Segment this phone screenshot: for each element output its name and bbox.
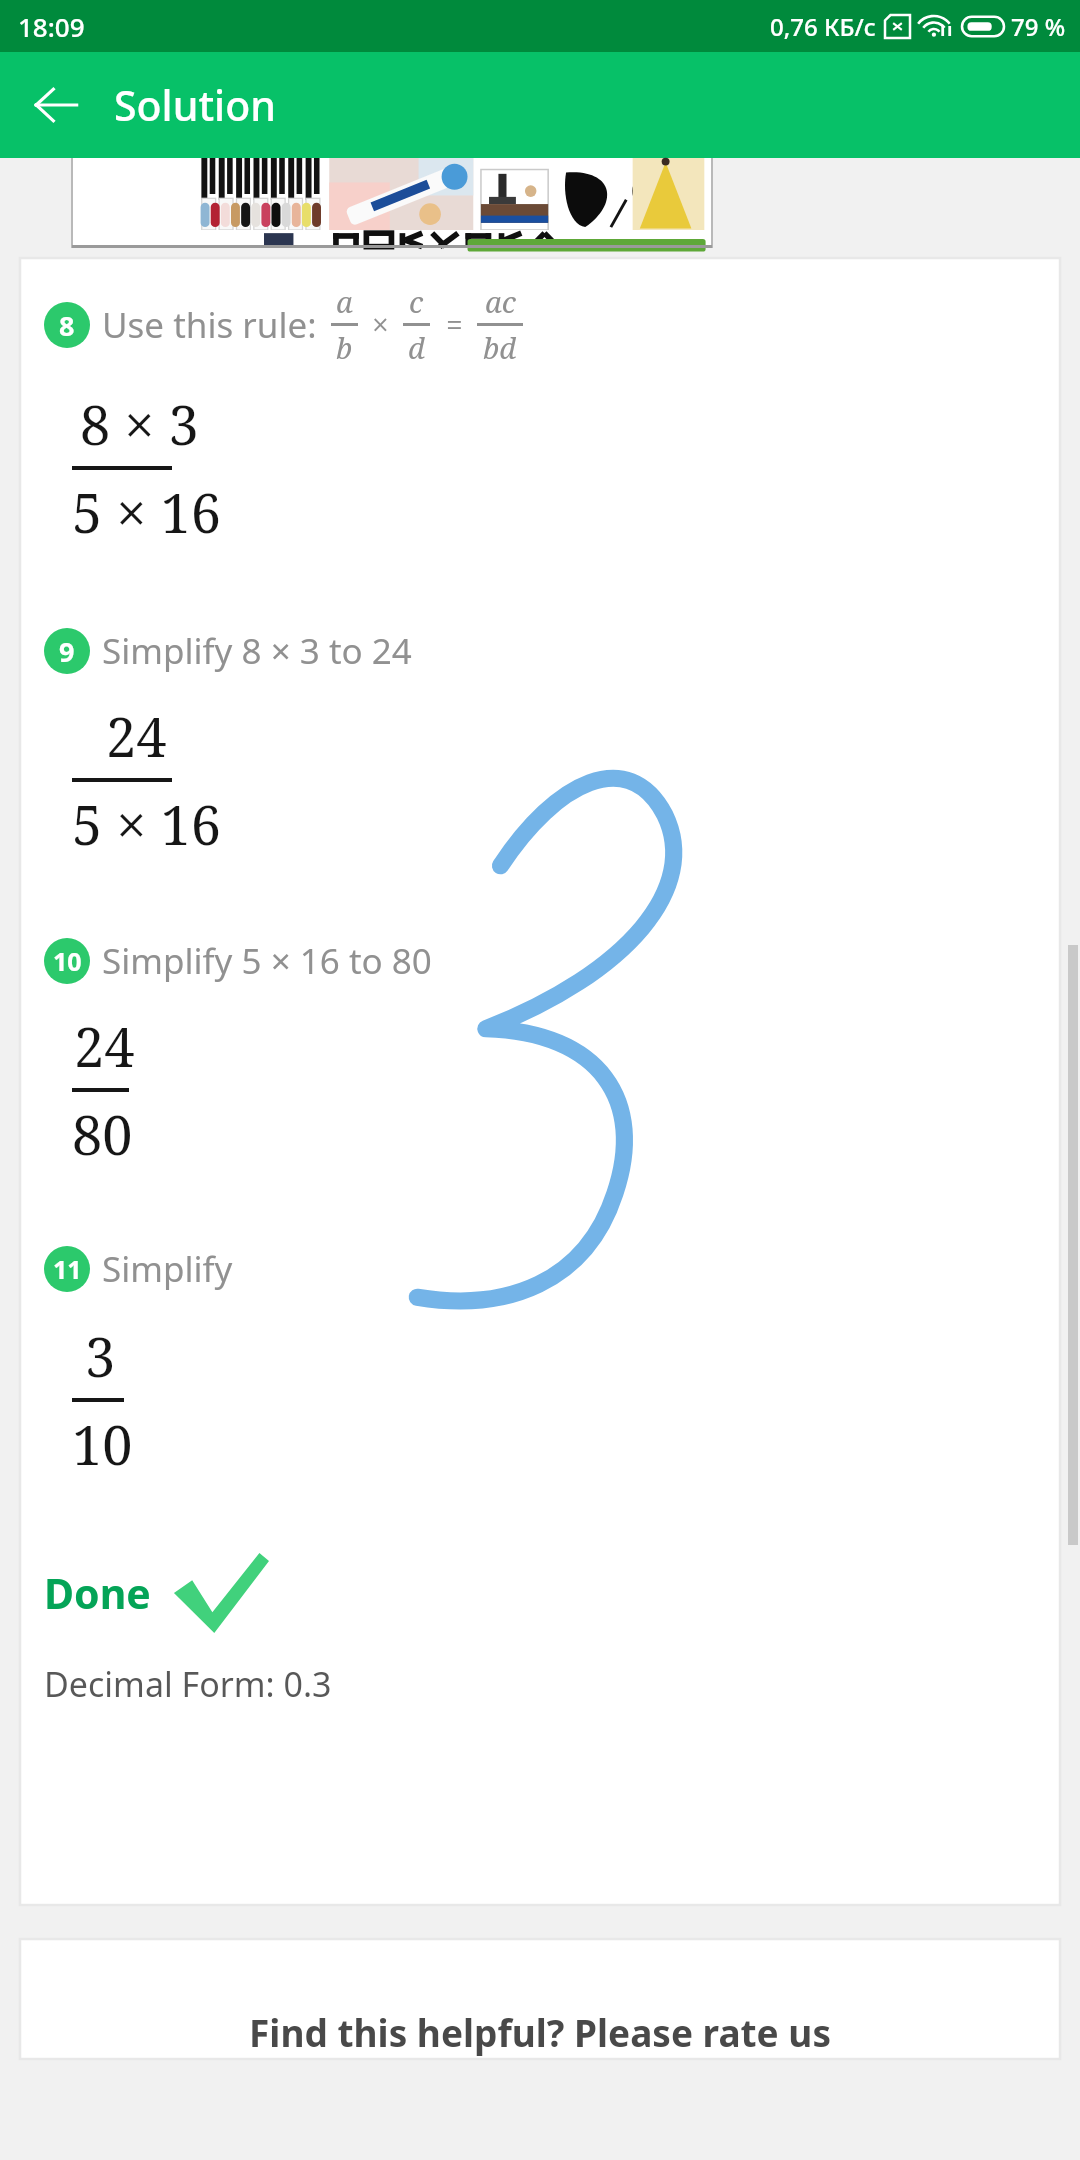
staticText: Use this rule:	[102, 301, 317, 349]
staticText: Find this helpful? Please rate us	[20, 2007, 1060, 2057]
staticText: 18:09	[18, 9, 85, 44]
staticText: Simplify 8 × 3 to 24	[102, 627, 412, 675]
staticText: Decimal Form: 0.3	[44, 1661, 332, 1707]
staticText: c	[409, 282, 424, 321]
staticText: ac	[485, 282, 516, 321]
button[interactable]: 9	[44, 627, 1060, 675]
staticText: 8 × 3	[80, 387, 199, 461]
staticText: 11	[53, 1252, 82, 1286]
staticText: ×	[372, 304, 389, 345]
staticText: Solution	[114, 77, 276, 133]
staticText: bd	[483, 328, 517, 367]
staticText: 79 %	[1011, 10, 1066, 43]
staticText: 5 × 16	[72, 787, 221, 861]
button[interactable]: Advertisement	[72, 158, 712, 248]
staticText: a	[336, 282, 353, 321]
staticText: 3	[85, 1319, 116, 1393]
staticText: =	[446, 304, 463, 345]
staticText: Simplify 5 × 16 to 80	[102, 937, 432, 985]
button[interactable]: 10	[44, 937, 1060, 985]
staticText: Simplify	[102, 1245, 233, 1293]
staticText: d	[408, 328, 425, 367]
button[interactable]: Find this helpful? Please rate us	[20, 1939, 1060, 2059]
staticText: 5 × 16	[72, 475, 221, 549]
staticText: b	[336, 328, 353, 367]
staticText: 80	[72, 1097, 133, 1171]
button[interactable]: 8	[44, 282, 1060, 367]
staticText: 24	[106, 699, 167, 773]
button[interactable]: Back	[16, 65, 96, 145]
staticText: 9	[59, 633, 75, 670]
staticText: 8	[59, 307, 75, 344]
staticText: Done	[44, 1565, 151, 1621]
staticText: 10	[72, 1407, 133, 1481]
staticText: 0,76 КБ/с	[770, 10, 876, 43]
staticText: 10	[53, 944, 82, 978]
button[interactable]: 11	[44, 1245, 1060, 1293]
staticText: 24	[74, 1009, 135, 1083]
